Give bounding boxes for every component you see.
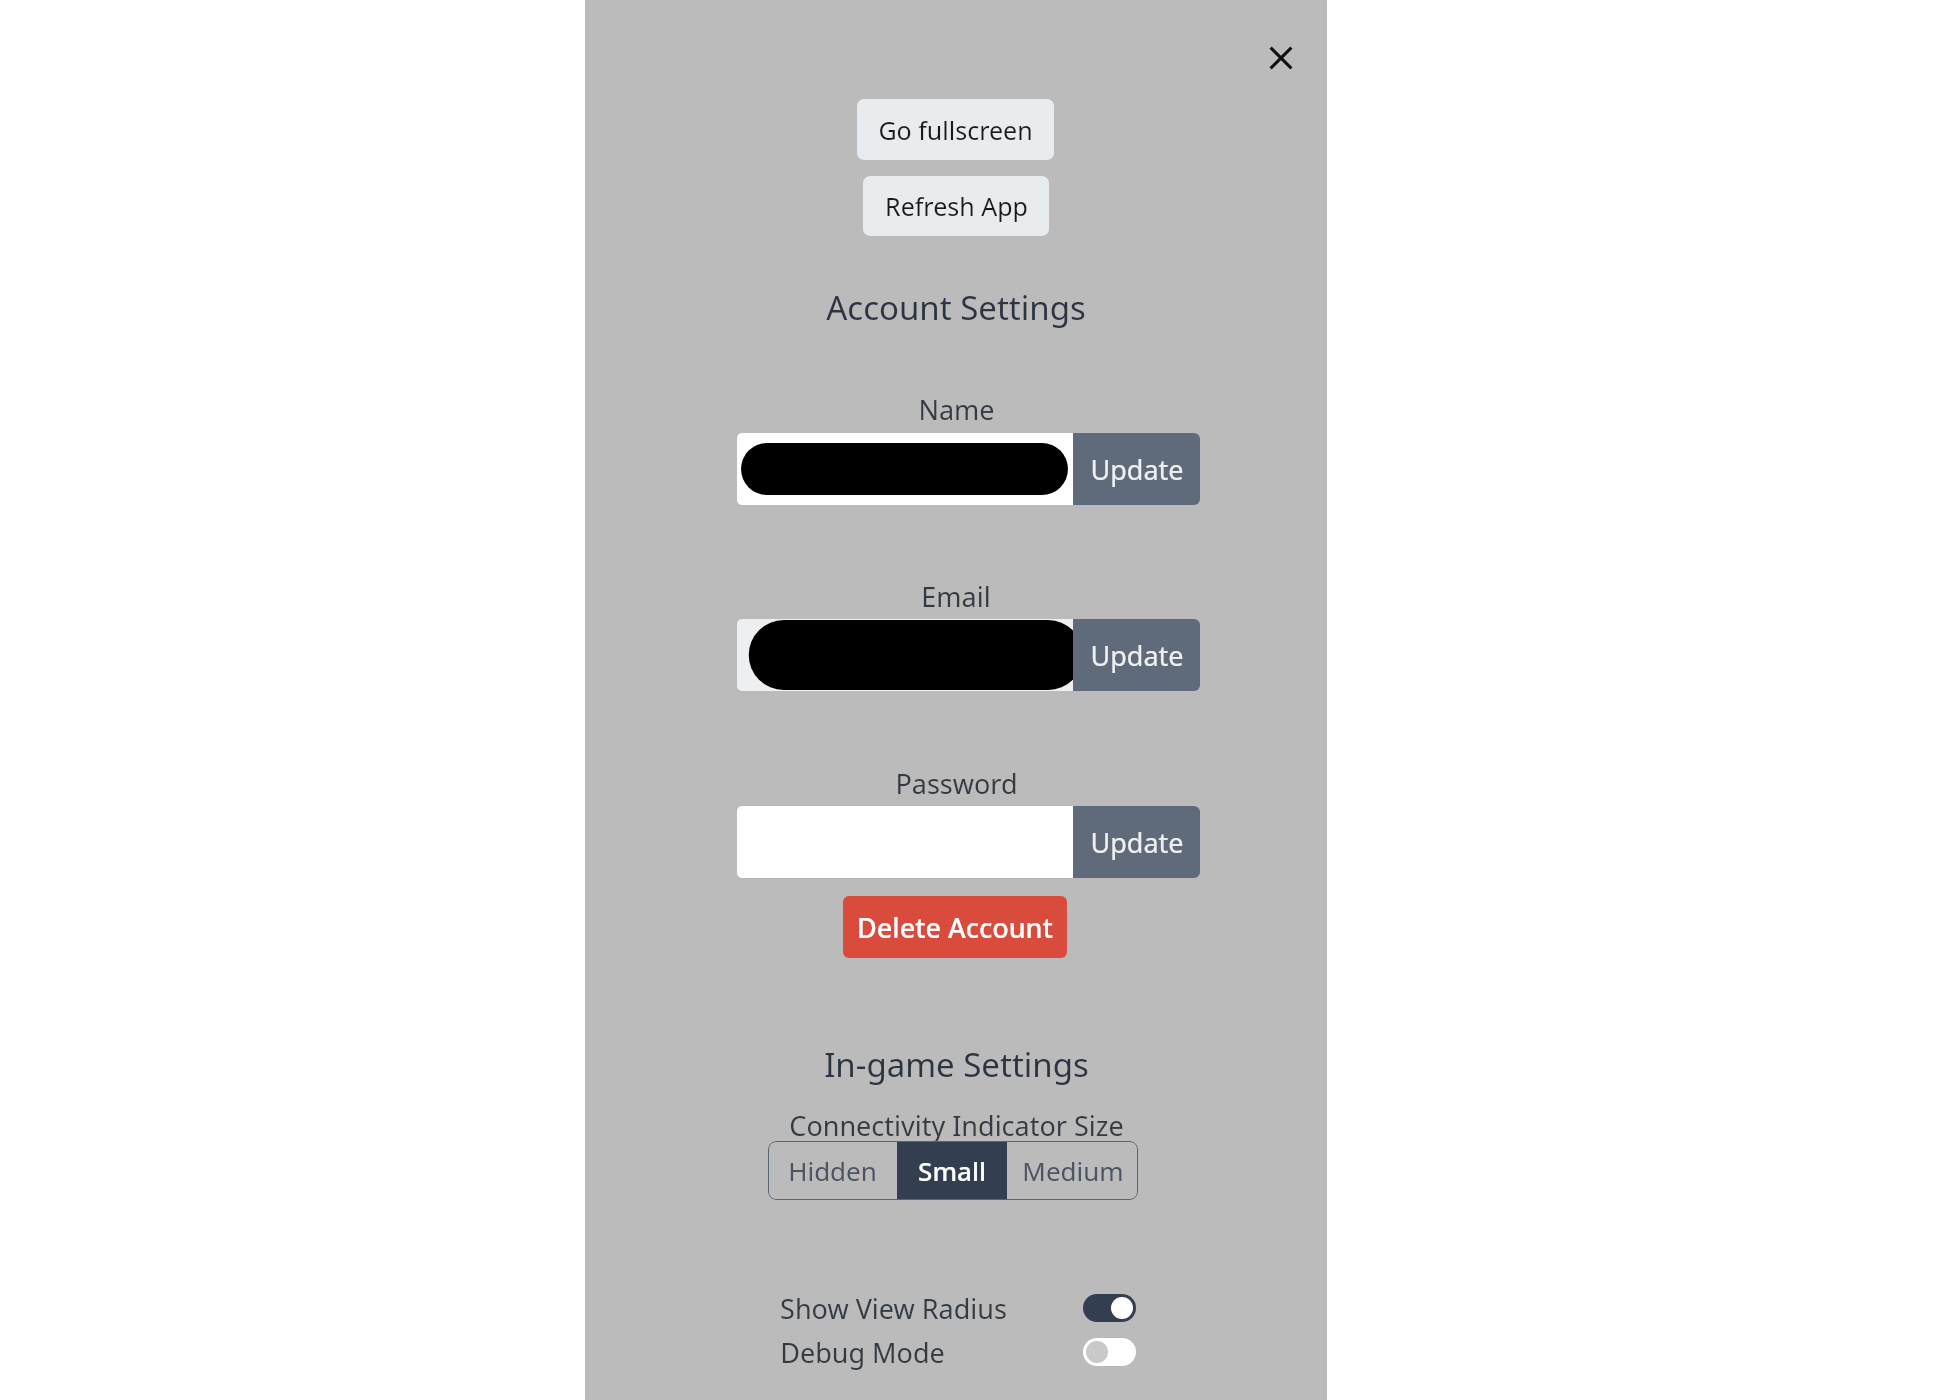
staticText: Delete Account	[857, 909, 1053, 946]
button[interactable]: Small	[897, 1141, 1007, 1200]
staticText: Medium	[1022, 1153, 1124, 1188]
staticText: Refresh App	[885, 189, 1028, 223]
button[interactable]: Close	[1253, 30, 1309, 86]
staticText: Update	[1090, 824, 1184, 861]
staticText: Go fullscreen	[878, 113, 1033, 147]
staticText: Account Settings	[826, 285, 1086, 330]
staticText: Name	[918, 391, 995, 428]
staticText: Update	[1090, 637, 1184, 674]
button[interactable]: Update	[1073, 806, 1200, 878]
staticText: Connectivity Indicator Size	[789, 1107, 1124, 1144]
button[interactable]: Update	[1073, 433, 1200, 505]
button[interactable]: Text input	[737, 619, 1073, 691]
button[interactable]: Delete Account	[843, 896, 1067, 958]
staticText: Password	[895, 765, 1018, 802]
button[interactable]: Hidden	[768, 1141, 897, 1200]
staticText: Debug Mode	[780, 1334, 945, 1371]
staticText: Small	[918, 1153, 986, 1188]
staticText: Show View Radius	[780, 1290, 1007, 1327]
button[interactable]: Show View Radius	[780, 1286, 1136, 1330]
button[interactable]: Refresh App	[863, 176, 1049, 236]
staticText: Update	[1090, 451, 1184, 488]
button[interactable]: Go fullscreen	[857, 99, 1054, 160]
staticText: In-game Settings	[824, 1042, 1089, 1087]
button[interactable]: Debug Mode	[780, 1330, 1136, 1374]
staticText: Hidden	[788, 1153, 877, 1188]
button[interactable]: Text input	[737, 433, 1073, 505]
button[interactable]: Update	[1073, 619, 1200, 691]
staticText: Email	[921, 578, 991, 615]
button[interactable]: Medium	[1007, 1141, 1138, 1200]
